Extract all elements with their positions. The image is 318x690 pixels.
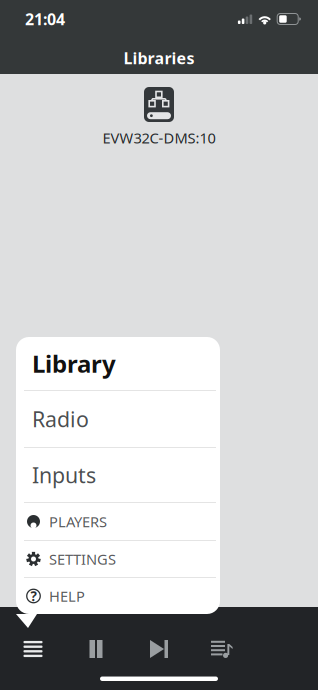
staticText: ? xyxy=(30,587,36,605)
button[interactable]: SETTINGS xyxy=(16,541,220,577)
button[interactable]: Inputs xyxy=(16,448,220,502)
staticText: Libraries xyxy=(123,47,194,69)
button[interactable]: Library xyxy=(16,337,220,390)
staticText: 21:04 xyxy=(25,8,65,30)
button[interactable]: Radio xyxy=(16,391,220,447)
button[interactable]: EVW32C-DMS:10 xyxy=(94,74,223,147)
staticText: EVW32C-DMS:10 xyxy=(102,128,215,147)
staticText: Library xyxy=(32,348,116,379)
button[interactable]: PLAYERS xyxy=(16,503,220,540)
button[interactable]: Menu xyxy=(1,629,64,669)
staticText: PLAYERS xyxy=(49,512,107,531)
staticText: Radio xyxy=(32,405,89,433)
button[interactable]: Next track xyxy=(127,629,190,669)
button[interactable]: Queue xyxy=(190,629,253,669)
button[interactable]: ? xyxy=(16,578,220,614)
staticText: Inputs xyxy=(32,461,96,489)
button[interactable]: Pause xyxy=(64,629,127,669)
staticText: SETTINGS xyxy=(49,549,116,569)
staticText: HELP xyxy=(49,586,85,606)
